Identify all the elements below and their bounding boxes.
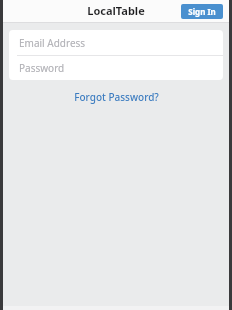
button[interactable]: Forgot Password? [68, 88, 165, 106]
button[interactable]: Sign In [181, 4, 223, 19]
button[interactable]: Email Address [9, 30, 223, 55]
staticText: Sign In [188, 6, 216, 17]
staticText: LocalTable [87, 3, 145, 18]
staticText: Password [19, 61, 65, 75]
button[interactable]: Password [9, 56, 223, 80]
staticText: Forgot Password? [74, 90, 159, 104]
staticText: Email Address [19, 36, 86, 50]
